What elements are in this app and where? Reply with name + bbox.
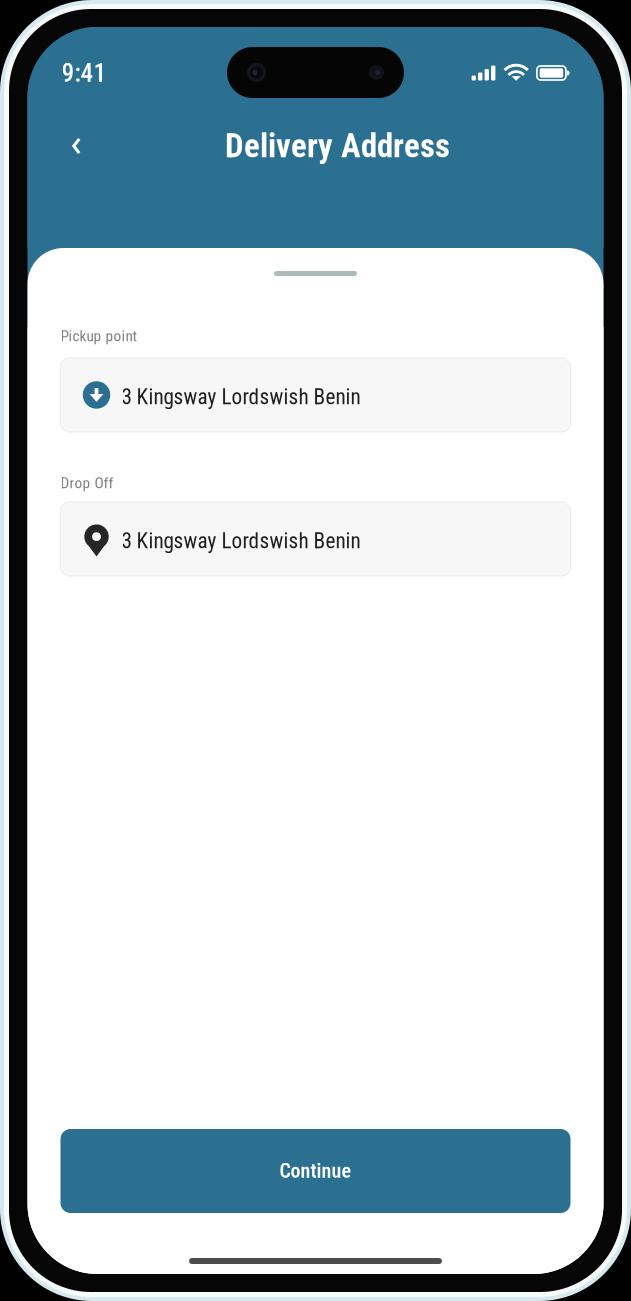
staticText: 9:41 bbox=[61, 58, 106, 88]
button[interactable]: Back bbox=[53, 123, 99, 169]
button[interactable]: 3 Kingsway Lordswish Benin bbox=[60, 502, 570, 576]
staticText: Drop Off bbox=[60, 474, 113, 492]
staticText: 3 Kingsway Lordswish Benin bbox=[121, 528, 360, 553]
button[interactable]: Continue bbox=[60, 1129, 570, 1213]
button[interactable]: 3 Kingsway Lordswish Benin bbox=[60, 358, 570, 432]
staticText: Pickup point bbox=[60, 327, 137, 345]
staticText: Delivery Address bbox=[225, 127, 450, 165]
staticText: Continue bbox=[279, 1159, 351, 1183]
staticText: 3 Kingsway Lordswish Benin bbox=[121, 384, 360, 409]
